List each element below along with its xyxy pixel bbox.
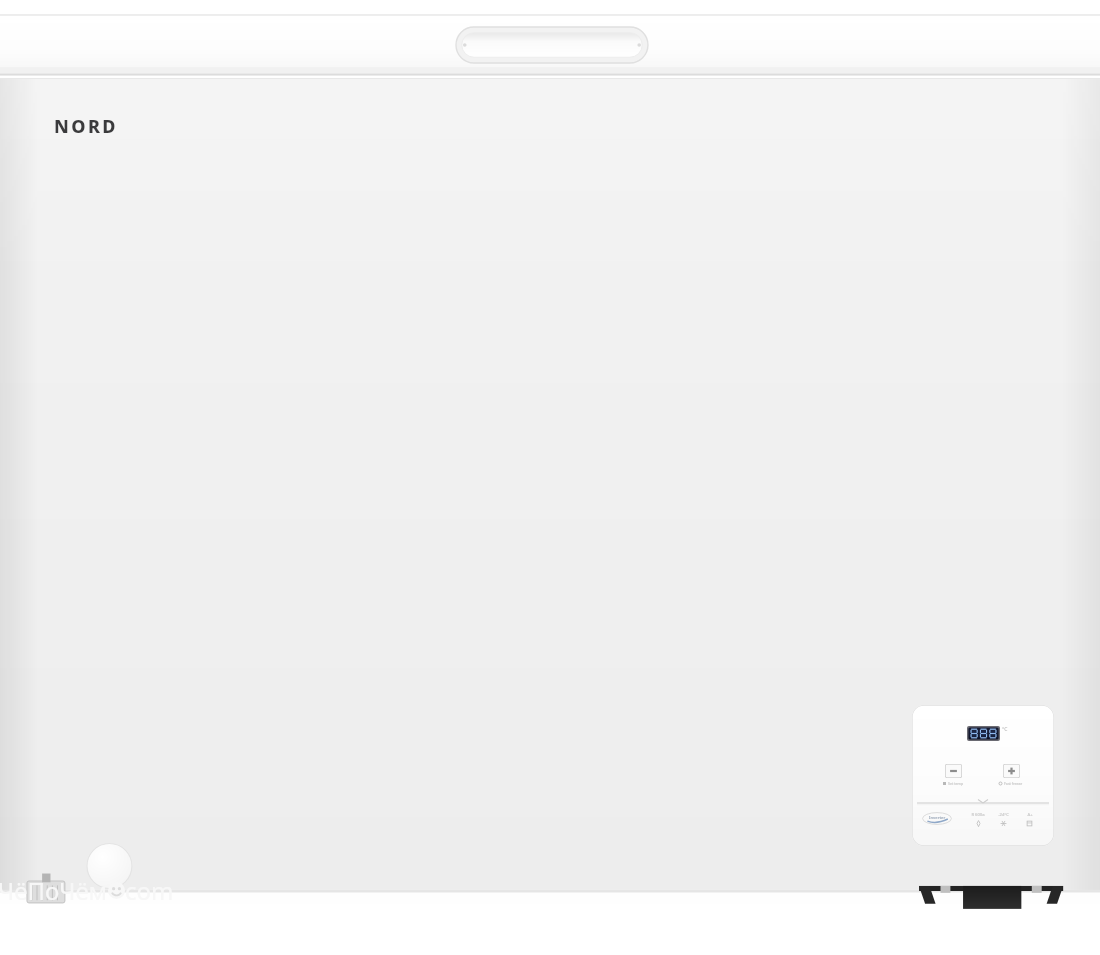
staticText: Set temp bbox=[948, 781, 964, 786]
button[interactable]: -24°C bbox=[997, 812, 1010, 827]
staticText: com bbox=[125, 874, 174, 907]
button[interactable]: Increase temperature bbox=[997, 762, 1025, 788]
staticText: Fast freeze bbox=[1004, 781, 1023, 786]
button[interactable]: Drain cap bbox=[84, 844, 136, 896]
staticText: R 600a bbox=[971, 812, 985, 818]
button[interactable]: Decrease temperature bbox=[941, 762, 966, 788]
button[interactable]: Open lid handle bbox=[455, 27, 647, 63]
button[interactable]: Levelling foot bbox=[22, 896, 62, 924]
button[interactable]: A+ bbox=[1025, 812, 1034, 827]
staticText: NORD bbox=[54, 114, 118, 139]
staticText: °C bbox=[1002, 726, 1008, 733]
button[interactable]: NORD brand bbox=[52, 112, 120, 141]
button[interactable]: Inverter bbox=[922, 812, 952, 825]
staticText: -24°C bbox=[998, 812, 1009, 818]
staticText: A+ bbox=[1027, 812, 1033, 818]
staticText: ЧёПоЧём bbox=[0, 874, 108, 907]
button[interactable]: R 600a bbox=[970, 812, 986, 827]
staticText: Inverter bbox=[929, 815, 946, 821]
button[interactable]: Temperature display bbox=[967, 726, 1000, 741]
